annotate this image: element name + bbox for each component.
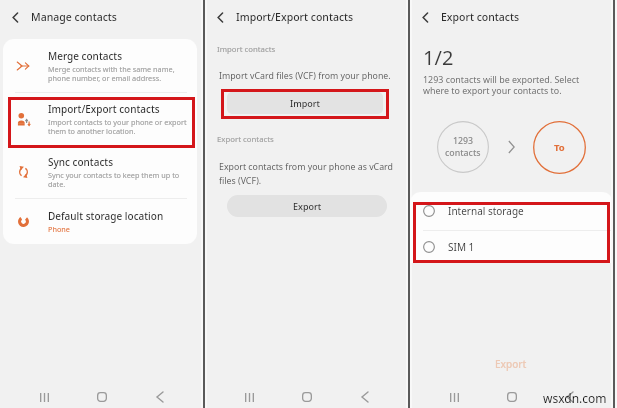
staticText: Internal storage	[448, 204, 524, 218]
button[interactable]: Export	[495, 357, 527, 371]
button[interactable]: Back	[149, 386, 171, 408]
staticText: Export	[293, 200, 322, 212]
staticText: SIM 1	[448, 240, 475, 254]
button[interactable]: Import/Export contacts	[3, 92, 197, 145]
button[interactable]: Recent apps	[443, 386, 465, 408]
staticText: contacts	[445, 147, 481, 159]
staticText: 1/2	[423, 44, 454, 71]
staticText: Export contacts from your phone as vCard…	[219, 161, 393, 187]
button[interactable]: Back	[559, 386, 581, 408]
button[interactable]: Merge contacts	[3, 39, 197, 92]
button[interactable]: Navigate up	[412, 4, 438, 30]
staticText: Manage contacts	[31, 10, 117, 24]
button[interactable]: Home	[91, 386, 113, 408]
staticText: Default storage location	[48, 209, 164, 223]
staticText: Export contacts	[217, 134, 274, 145]
staticText: Import contacts to your phone or export …	[48, 117, 187, 136]
button[interactable]: To	[533, 121, 586, 174]
staticText: wsxdn.com	[543, 390, 607, 406]
button[interactable]: Default storage location	[3, 198, 197, 244]
button[interactable]: Navigate up	[2, 4, 28, 30]
staticText: Export	[495, 357, 527, 371]
staticText: Import vCard files (VCF) from your phone…	[219, 70, 391, 82]
button[interactable]: Internal storage	[410, 192, 613, 230]
button[interactable]: Export	[227, 195, 387, 217]
staticText: Import/Export contacts	[236, 10, 354, 24]
staticText: Import/Export contacts	[48, 102, 160, 116]
button[interactable]: SIM 1	[410, 230, 613, 263]
staticText: Export contacts	[441, 10, 520, 24]
staticText: To	[554, 141, 565, 154]
staticText: Merge contacts with the same name, phone…	[48, 64, 175, 83]
button[interactable]: Sync contacts	[3, 145, 197, 198]
button[interactable]: Recent apps	[238, 386, 260, 408]
staticText: Import	[290, 97, 321, 109]
staticText: Merge contacts	[48, 49, 123, 63]
button[interactable]: Import	[227, 92, 383, 114]
staticText: 1293 contacts will be exported. Select w…	[423, 73, 580, 96]
staticText: Sync contacts	[48, 155, 113, 169]
staticText: Sync your contacts to keep them up to da…	[48, 170, 180, 189]
button[interactable]: Navigate up	[207, 4, 233, 30]
button[interactable]: Recent apps	[33, 386, 55, 408]
button[interactable]: Home	[296, 386, 318, 408]
staticText: 1293	[453, 135, 474, 147]
button[interactable]: Back	[354, 386, 376, 408]
staticText: Phone	[48, 224, 70, 234]
button[interactable]: Home	[501, 386, 523, 408]
staticText: Import contacts	[217, 44, 276, 55]
